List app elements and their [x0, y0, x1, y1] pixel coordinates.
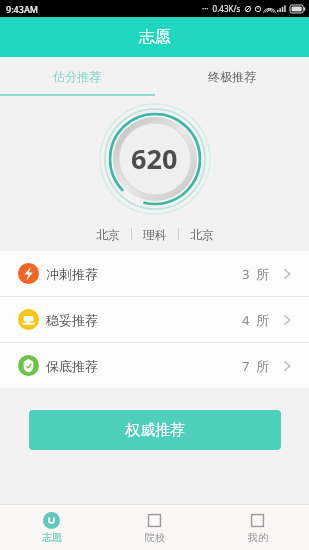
- staticText: 4: [242, 311, 250, 329]
- staticText: 终极推荐: [208, 69, 256, 84]
- staticText: 所: [256, 266, 269, 282]
- staticText: 志愿: [139, 27, 171, 47]
- staticText: 所: [256, 312, 269, 328]
- staticText: 志愿: [42, 531, 62, 544]
- button[interactable]: 理科: [132, 221, 178, 247]
- staticText: 所: [256, 358, 269, 374]
- button[interactable]: 终极推荐: [154, 57, 309, 96]
- staticText: 我的: [248, 531, 268, 544]
- button[interactable]: 志愿: [0, 505, 103, 550]
- staticText: 权威推荐: [125, 421, 185, 440]
- staticText: 院校: [145, 531, 165, 544]
- staticText: 北京: [96, 227, 120, 242]
- button[interactable]: 权威推荐: [29, 410, 281, 450]
- button[interactable]: 北京: [179, 221, 225, 247]
- button[interactable]: 冲刺推荐: [0, 251, 309, 296]
- staticText: 冲刺推荐: [46, 266, 98, 282]
- button[interactable]: 我的: [206, 505, 309, 550]
- staticText: 稳妥推荐: [46, 312, 98, 328]
- staticText: 3: [242, 265, 250, 283]
- staticText: 理科: [143, 227, 167, 242]
- button[interactable]: 北京: [85, 221, 131, 247]
- staticText: ··· 0.43K/s: [202, 3, 241, 14]
- staticText: 保底推荐: [46, 358, 98, 374]
- button[interactable]: 保底推荐: [0, 343, 309, 388]
- button[interactable]: 稳妥推荐: [0, 297, 309, 342]
- staticText: 620: [131, 140, 178, 177]
- button[interactable]: 院校: [103, 505, 206, 550]
- staticText: 9:43AM: [6, 3, 39, 15]
- staticText: 估分推荐: [53, 69, 101, 84]
- staticText: 7: [242, 357, 250, 375]
- staticText: 北京: [190, 227, 214, 242]
- button[interactable]: 估分推荐: [0, 57, 154, 96]
